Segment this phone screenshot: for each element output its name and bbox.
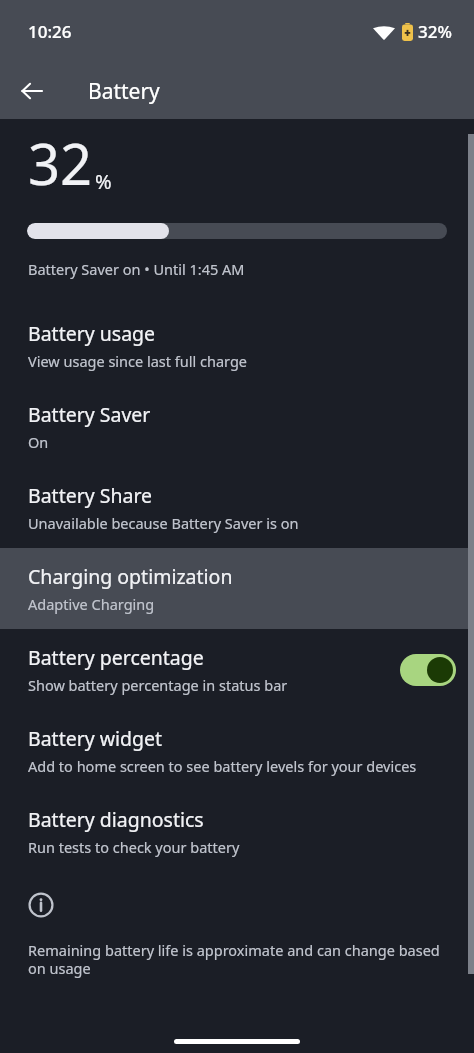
staticText: Show battery percentage in status bar [28,675,288,695]
staticText: Battery usage [28,320,156,347]
staticText: Battery diagnostics [28,806,204,833]
button[interactable]: Battery percentage toggle, on [400,654,456,686]
button[interactable]: Battery Share [0,467,474,548]
button[interactable]: Battery usage [0,305,474,386]
staticText: On [28,432,49,452]
staticText: Unavailable because Battery Saver is on [28,513,299,533]
staticText: Battery Saver [28,401,151,428]
staticText: Battery [88,77,160,106]
staticText: Battery widget [28,725,163,752]
button[interactable]: Battery percentage [0,629,474,710]
staticText: 32 [28,125,93,201]
other: Information [28,892,54,918]
staticText: Battery Share [28,482,153,509]
staticText: 10:26 [28,20,72,43]
button[interactable]: Battery Saver [0,386,474,467]
staticText: Add to home screen to see battery levels… [28,756,417,776]
button[interactable]: Battery widget [0,710,474,791]
button[interactable]: Battery diagnostics [0,791,474,872]
button[interactable]: Charging optimization [0,548,474,629]
staticText: Battery Saver on • Until 1:45 AM [28,259,245,279]
staticText: View usage since last full charge [28,351,247,371]
staticText: Battery percentage [28,644,204,671]
staticText: % [95,168,112,195]
staticText: Charging optimization [28,563,233,590]
staticText: Run tests to check your battery [28,837,240,857]
button[interactable]: Back [10,69,54,113]
staticText: Adaptive Charging [28,594,155,614]
staticText: 32% [418,20,452,43]
staticText: Remaining battery life is approximate an… [28,940,450,978]
